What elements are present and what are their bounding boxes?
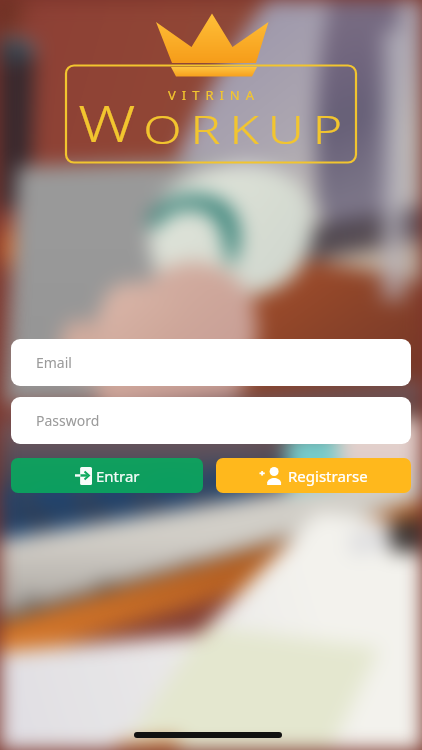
staticText: Email [36,353,72,372]
staticText: Registrarse [288,466,368,486]
staticText: VITRINA [3,86,422,104]
staticText: Password [36,411,100,430]
staticText: Entrar [96,466,140,486]
button[interactable]: Registrarse [216,458,411,493]
staticText: W [78,89,143,157]
staticText: ORKUP [143,102,352,155]
button[interactable]: Password [11,397,411,444]
button[interactable]: Email [11,339,411,386]
button[interactable]: Entrar [11,458,203,493]
